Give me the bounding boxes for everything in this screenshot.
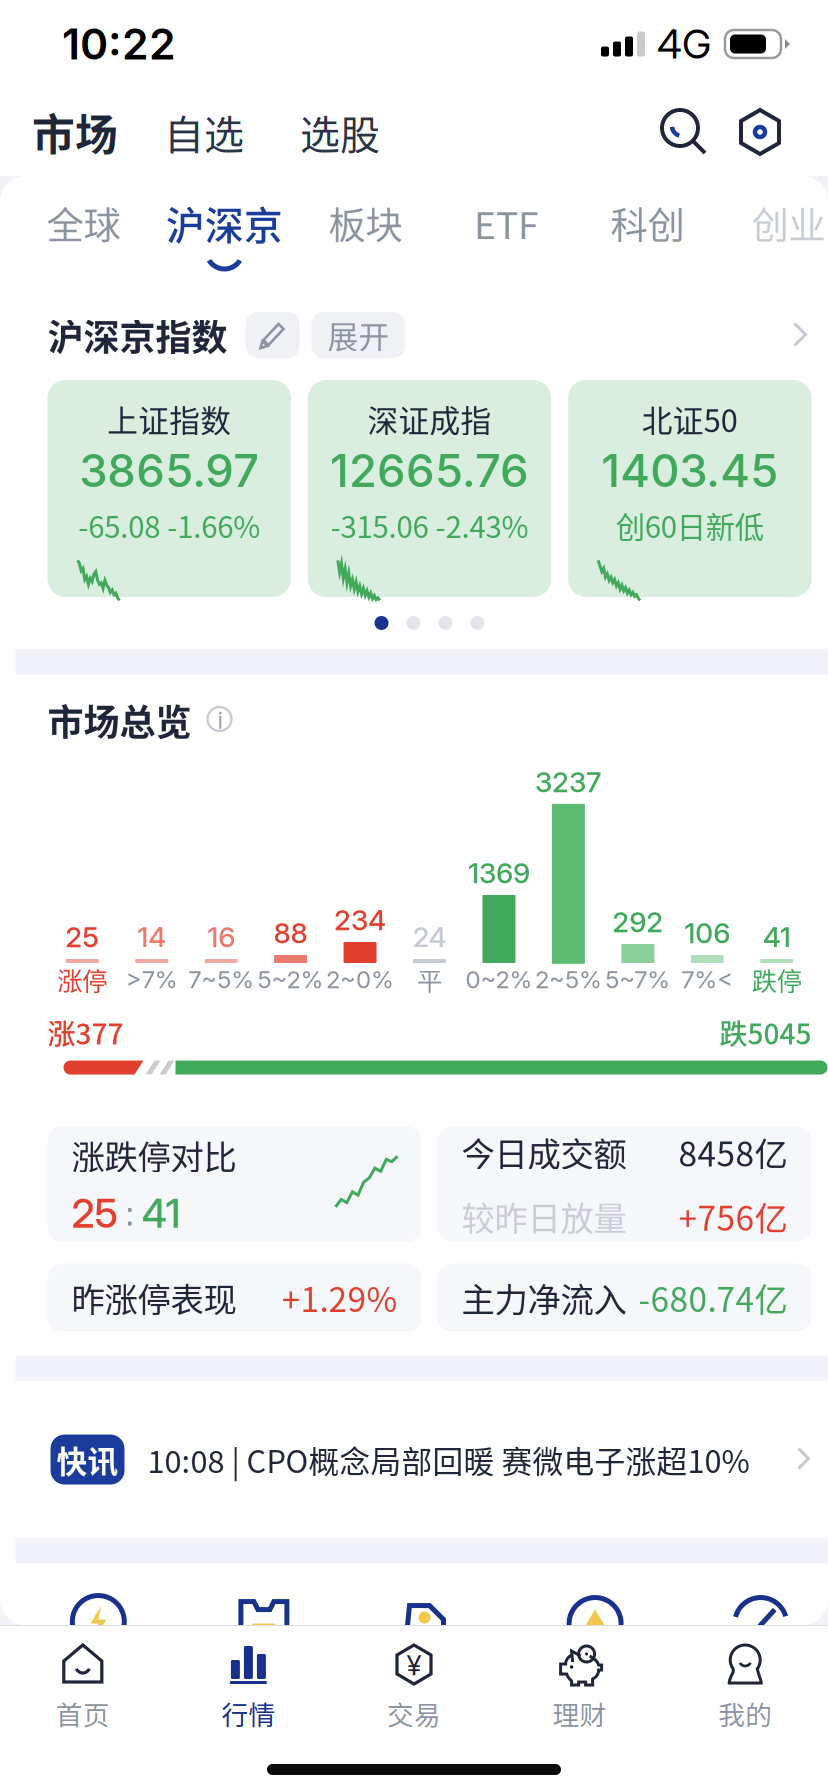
staticText: 快讯	[56, 1437, 118, 1482]
button[interactable]: 上证指数	[47, 380, 291, 597]
button[interactable]: 首页	[0, 1626, 166, 1741]
staticText: 12665.76	[330, 443, 529, 498]
staticText: 88	[274, 916, 308, 950]
staticText: 较昨日放量	[461, 1192, 626, 1240]
staticText: 106	[684, 916, 730, 950]
button[interactable]: ETF	[436, 176, 577, 290]
button[interactable]: 科创	[577, 176, 718, 290]
button[interactable]: ¥	[331, 1626, 497, 1741]
button[interactable]: 行情	[166, 1626, 331, 1741]
staticText: 2~5%	[535, 965, 602, 994]
staticText: 主力净流入	[461, 1273, 626, 1322]
staticText: 上证指数	[107, 397, 231, 441]
staticText: 7~5%	[188, 965, 254, 994]
staticText: 234	[334, 903, 386, 937]
staticText: 首页	[56, 1694, 110, 1733]
staticText: -680.74亿	[638, 1273, 787, 1322]
staticText: 昨涨停表现	[71, 1273, 236, 1322]
staticText: 交易	[387, 1694, 441, 1733]
staticText: 8458亿	[678, 1128, 787, 1176]
staticText: 25	[71, 1189, 117, 1237]
button[interactable]: 快捷入口	[181, 1591, 347, 1651]
button[interactable]: 我的	[662, 1626, 828, 1741]
staticText: 41	[141, 1189, 180, 1237]
staticText: 全球	[46, 196, 120, 250]
staticText: 10:22	[62, 18, 176, 70]
staticText: 2~0%	[326, 965, 394, 994]
staticText: 沪深京指数	[47, 309, 227, 361]
staticText: 涨377	[47, 1012, 123, 1052]
staticText: 14	[137, 920, 166, 954]
staticText: 创60日新低	[616, 504, 764, 546]
staticText: 我的	[718, 1694, 772, 1733]
staticText: 跌5045	[719, 1012, 811, 1052]
staticText: 0~2%	[465, 965, 532, 994]
button[interactable]: 市场	[32, 101, 118, 163]
button[interactable]: 理财	[497, 1626, 662, 1741]
button[interactable]: 搜索	[660, 108, 708, 156]
staticText: ¥	[406, 1648, 421, 1682]
staticText: i	[217, 705, 223, 734]
button[interactable]: 快捷入口	[512, 1591, 678, 1651]
staticText: +756亿	[678, 1192, 787, 1240]
staticText: 1403.45	[601, 443, 778, 498]
staticText: 涨停	[57, 961, 107, 998]
staticText: 跌停	[752, 961, 802, 998]
staticText: 41	[763, 920, 791, 954]
staticText: 理财	[553, 1694, 607, 1733]
staticText: 板块	[328, 196, 402, 250]
staticText: 涨跌停对比	[71, 1131, 236, 1179]
staticText: 北证50	[642, 397, 738, 441]
staticText: 行情	[221, 1694, 275, 1733]
button[interactable]: 编辑	[227, 312, 299, 358]
button[interactable]: 沪深京	[154, 176, 295, 290]
button[interactable]: 快捷入口	[15, 1591, 181, 1651]
staticText: +1.29%	[281, 1273, 397, 1322]
button[interactable]: 快捷入口	[347, 1591, 512, 1651]
staticText: 25	[65, 920, 99, 954]
staticText: :	[125, 1192, 133, 1234]
staticText: 24	[412, 920, 446, 954]
staticText: 科创	[610, 196, 684, 250]
staticText: 深证成指	[367, 397, 491, 441]
staticText: 今日成交额	[461, 1128, 626, 1176]
staticText: >7%	[126, 965, 178, 994]
staticText: 市场	[32, 101, 118, 163]
staticText: -315.06 -2.43%	[330, 504, 528, 546]
staticText: 平	[417, 961, 442, 998]
button[interactable]: 全球	[13, 176, 154, 290]
staticText: 3237	[535, 765, 602, 799]
button[interactable]: 自选	[118, 103, 244, 161]
button[interactable]: 选股	[244, 103, 380, 161]
button[interactable]: 快捷入口	[678, 1591, 828, 1651]
staticText: 5~7%	[605, 965, 670, 994]
staticText: 292	[612, 905, 663, 939]
staticText: 4G	[657, 20, 711, 68]
button[interactable]: 设置	[708, 107, 784, 157]
button[interactable]: 深证成指	[308, 380, 551, 597]
staticText: 7%<	[681, 965, 733, 994]
staticText: 自选	[164, 103, 244, 161]
staticText: -65.08 -1.66%	[78, 504, 260, 546]
staticText: 市场总览	[47, 694, 191, 746]
staticText: 沪深京	[166, 195, 283, 251]
button[interactable]: 更多	[783, 315, 817, 355]
button[interactable]: 快讯	[15, 1381, 828, 1537]
button[interactable]: 展开	[299, 312, 405, 358]
staticText: 10:08 | CPO概念局部回暖 赛微电子涨超10%	[147, 1437, 749, 1482]
staticText: 选股	[300, 103, 380, 161]
staticText: ETF	[474, 196, 539, 250]
staticText: 3865.97	[79, 443, 259, 498]
button[interactable]: 创业	[718, 176, 828, 290]
staticText: 展开	[327, 313, 389, 357]
button[interactable]: 板块	[295, 176, 436, 290]
staticText: 16	[207, 920, 235, 954]
staticText: 创业	[751, 196, 825, 250]
staticText: 5~2%	[258, 965, 324, 994]
staticText: 1369	[468, 856, 530, 890]
button[interactable]: 北证50	[568, 380, 811, 597]
